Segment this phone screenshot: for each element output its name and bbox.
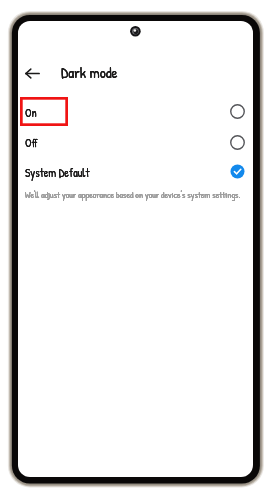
staticText: Off bbox=[25, 135, 38, 151]
staticText: We'll adjust your appearance based on yo… bbox=[25, 189, 241, 201]
staticText: We'll adjust your appearance based on yo… bbox=[25, 189, 241, 201]
button[interactable] bbox=[18, 157, 253, 187]
button[interactable] bbox=[18, 127, 253, 157]
staticText: Dark mode bbox=[61, 62, 118, 82]
staticText: On bbox=[25, 105, 37, 121]
staticText: Dark mode bbox=[61, 62, 118, 82]
staticText: On bbox=[25, 105, 37, 121]
staticText: We'll adjust your appearance based on yo… bbox=[25, 189, 241, 201]
button[interactable] bbox=[18, 97, 253, 127]
staticText: System Default bbox=[25, 165, 90, 181]
staticText: Off bbox=[25, 135, 38, 151]
staticText: We'll adjust your appearance based on yo… bbox=[25, 189, 241, 201]
staticText: System Default bbox=[25, 165, 90, 181]
staticText: System Default bbox=[25, 165, 90, 181]
staticText: Off bbox=[25, 135, 38, 151]
staticText: On bbox=[25, 105, 37, 121]
staticText: System Default bbox=[25, 165, 90, 181]
staticText: On bbox=[25, 105, 37, 121]
staticText: Dark mode bbox=[61, 62, 118, 82]
button[interactable]: Navigate up bbox=[24, 63, 40, 89]
staticText: Off bbox=[25, 135, 38, 151]
staticText: Dark mode bbox=[61, 62, 118, 82]
